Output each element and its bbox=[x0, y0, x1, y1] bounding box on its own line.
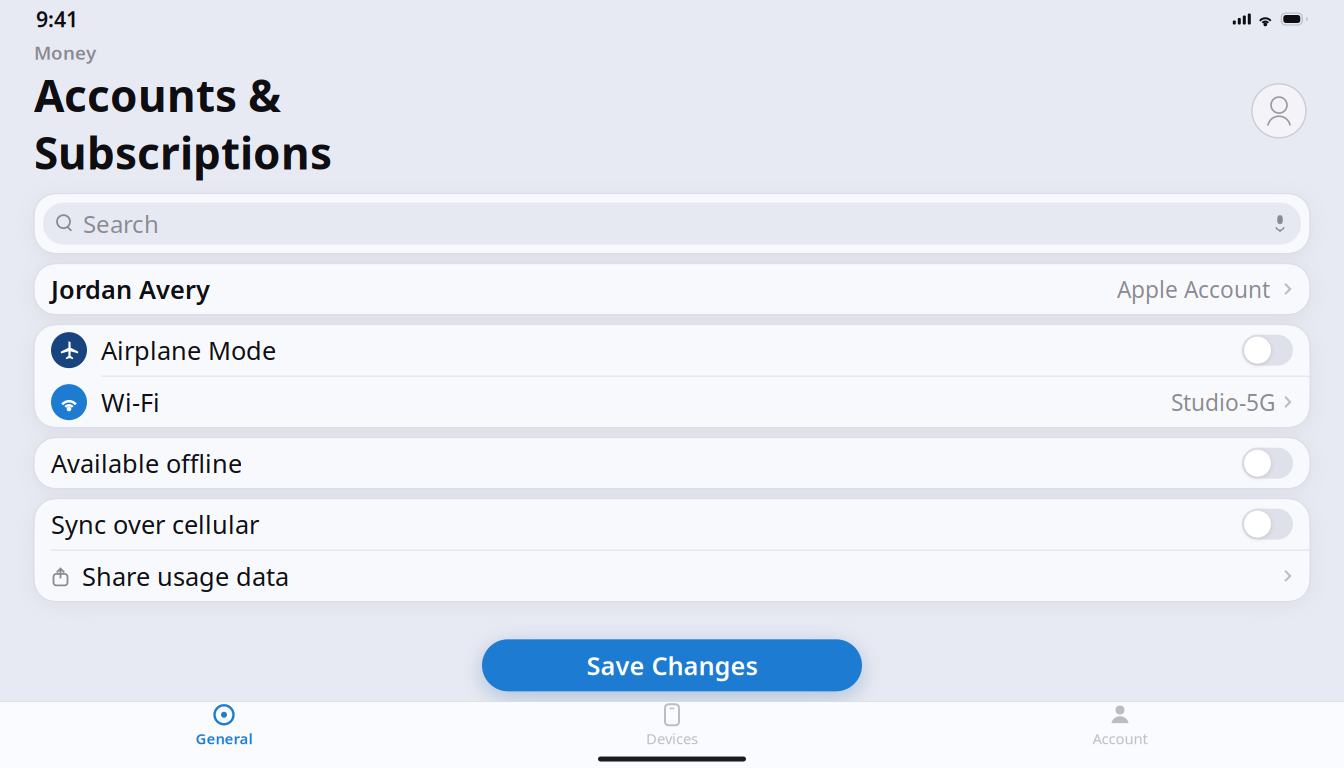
button[interactable]: Sync over cellular bbox=[34, 499, 1310, 551]
staticText: Studio-5G bbox=[1171, 387, 1276, 417]
staticText: Subscriptions bbox=[34, 123, 332, 182]
button[interactable]: General bbox=[0, 702, 448, 750]
button[interactable]: Jordan Avery bbox=[34, 264, 1310, 315]
staticText: Share usage data bbox=[82, 559, 289, 593]
button[interactable]: Account bbox=[896, 702, 1344, 750]
staticText: Search bbox=[83, 208, 159, 240]
staticText: Wi-Fi bbox=[101, 385, 160, 419]
staticText: Airplane Mode bbox=[101, 333, 276, 367]
staticText: Available offline bbox=[51, 446, 242, 480]
staticText: 9:41 bbox=[36, 5, 78, 33]
button[interactable]: Search bbox=[34, 194, 1310, 254]
button[interactable]: Share usage data bbox=[34, 551, 1310, 602]
staticText: General bbox=[195, 729, 252, 748]
staticText: Money bbox=[34, 40, 96, 65]
staticText: Devices bbox=[646, 729, 698, 748]
button[interactable]: Available offline bbox=[34, 438, 1310, 489]
button[interactable]: Devices bbox=[448, 702, 896, 750]
staticText: Save Changes bbox=[586, 648, 757, 682]
staticText: Account bbox=[1092, 729, 1147, 748]
staticText: Accounts & bbox=[34, 66, 281, 124]
button[interactable]: Airplane Mode bbox=[34, 325, 1310, 377]
staticText: Jordan Avery bbox=[51, 272, 210, 306]
button[interactable]: Wi-Fi bbox=[34, 377, 1310, 428]
staticText: Sync over cellular bbox=[51, 507, 259, 541]
button[interactable]: Save Changes bbox=[482, 639, 862, 691]
button[interactable]: Account bbox=[1248, 80, 1310, 142]
staticText: Apple Account bbox=[1117, 274, 1270, 304]
